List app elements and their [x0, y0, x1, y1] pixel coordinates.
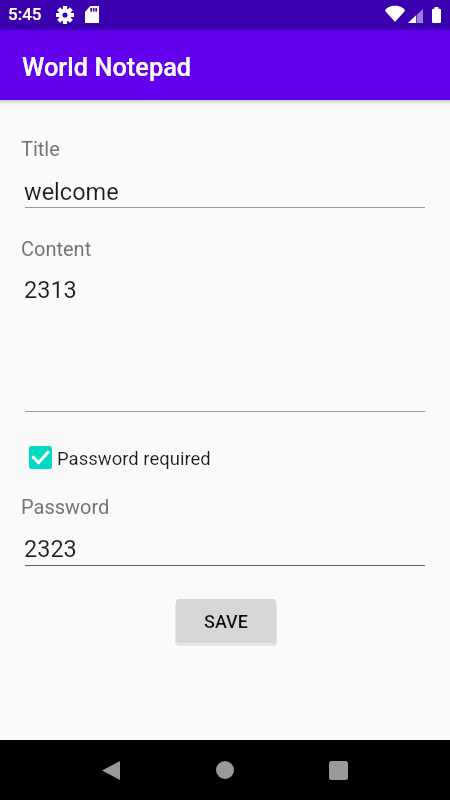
button[interactable]: Back [81, 740, 141, 800]
staticText: SAVE [204, 611, 248, 632]
button[interactable]: Password required [29, 446, 211, 469]
staticText: Title [21, 137, 60, 160]
staticText: 2313 [24, 276, 77, 304]
staticText: World Notepad [22, 52, 192, 82]
staticText: 5:45 [8, 4, 42, 24]
button[interactable]: Title field [20, 136, 430, 208]
button[interactable]: Password field [20, 494, 430, 566]
staticText: Password required [57, 448, 211, 470]
button[interactable]: SAVE [176, 599, 276, 643]
button[interactable]: Home [195, 740, 255, 800]
staticText: welcome [24, 178, 119, 206]
button[interactable]: Recents [308, 740, 368, 800]
button[interactable]: Content field [20, 236, 430, 412]
staticText: Password [21, 495, 110, 518]
staticText: Content [21, 237, 92, 260]
staticText: 2323 [24, 535, 77, 563]
